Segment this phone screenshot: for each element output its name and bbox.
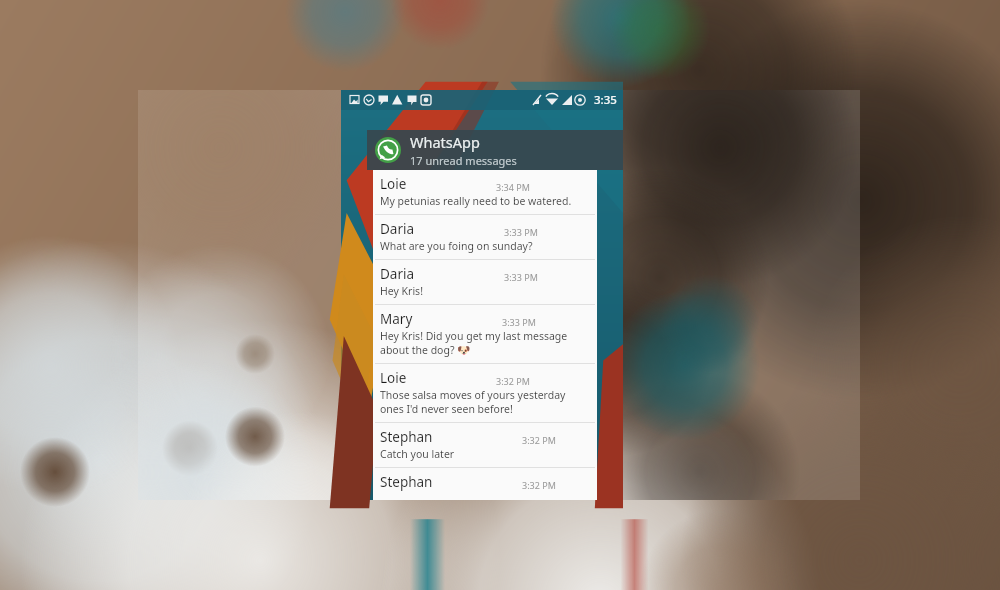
staticText: 3:32 PM	[522, 479, 556, 491]
staticText: Those salsa moves of yours yesterday wer…	[380, 388, 591, 402]
staticText: 3:34 PM	[496, 181, 530, 193]
staticText: 3:33 PM	[504, 271, 538, 283]
staticText: 3:32 PM	[496, 375, 530, 387]
button[interactable]: Daria	[373, 260, 597, 304]
staticText: Hey Kris!	[380, 284, 423, 298]
staticText: Mary	[380, 310, 413, 328]
button[interactable]: Loie	[373, 364, 597, 422]
button[interactable]: Stephan	[373, 423, 597, 467]
staticText: Daria	[380, 265, 415, 283]
staticText: Stephan	[380, 473, 433, 491]
staticText: 3:33 PM	[502, 316, 536, 328]
staticText: 3:32 PM	[522, 434, 556, 446]
staticText: WhatsApp	[410, 132, 480, 152]
staticText: Hey Kris! Did you get my last message	[380, 329, 568, 343]
staticText: My petunias really need to be watered.	[380, 194, 572, 208]
button[interactable]: Daria	[373, 215, 597, 259]
staticText: Loie	[380, 175, 407, 193]
staticText: Catch you later	[380, 447, 455, 461]
staticText: Stephan	[380, 428, 433, 446]
staticText: ones I'd never seen before!	[380, 402, 513, 416]
button[interactable]: Loie	[373, 170, 597, 214]
button[interactable]: Mary	[373, 305, 597, 363]
staticText: about the dog? 🐶	[380, 343, 471, 357]
staticText: Daria	[380, 220, 415, 238]
staticText: 3:35	[594, 92, 617, 108]
staticText: What are you foing on sunday?	[380, 239, 533, 253]
staticText: 3:33 PM	[504, 226, 538, 238]
button[interactable]: Stephan	[373, 468, 597, 500]
button[interactable]: WhatsApp	[367, 130, 623, 170]
staticText: Loie	[380, 369, 407, 387]
staticText: 17 unread messages	[410, 153, 517, 168]
